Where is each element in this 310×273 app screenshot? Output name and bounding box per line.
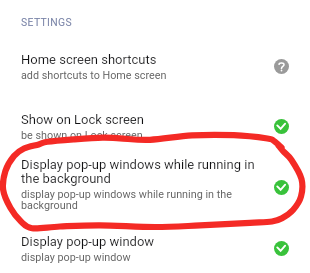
staticText: display pop-up windows while running in … bbox=[21, 188, 261, 212]
staticText: Home screen shortcuts bbox=[21, 52, 157, 67]
button[interactable]: Enabled bbox=[274, 119, 289, 134]
button[interactable]: Enabled bbox=[274, 241, 289, 256]
button[interactable] bbox=[0, 44, 310, 90]
staticText: Display pop-up windows while running in … bbox=[21, 157, 261, 187]
button[interactable]: Enabled bbox=[274, 180, 289, 195]
button[interactable]: SETTINGS bbox=[14, 11, 79, 33]
staticText: Display pop-up window bbox=[21, 234, 155, 249]
button[interactable] bbox=[0, 152, 310, 222]
staticText: Show on Lock screen bbox=[21, 112, 144, 127]
staticText: display pop-up window bbox=[21, 251, 131, 264]
staticText: SETTINGS bbox=[21, 16, 72, 28]
button[interactable] bbox=[0, 228, 310, 273]
staticText: add shortcuts to Home screen bbox=[21, 69, 167, 82]
staticText: be shown on Lock screen bbox=[21, 129, 143, 142]
button[interactable]: Help bbox=[274, 59, 289, 74]
button[interactable] bbox=[0, 104, 310, 150]
